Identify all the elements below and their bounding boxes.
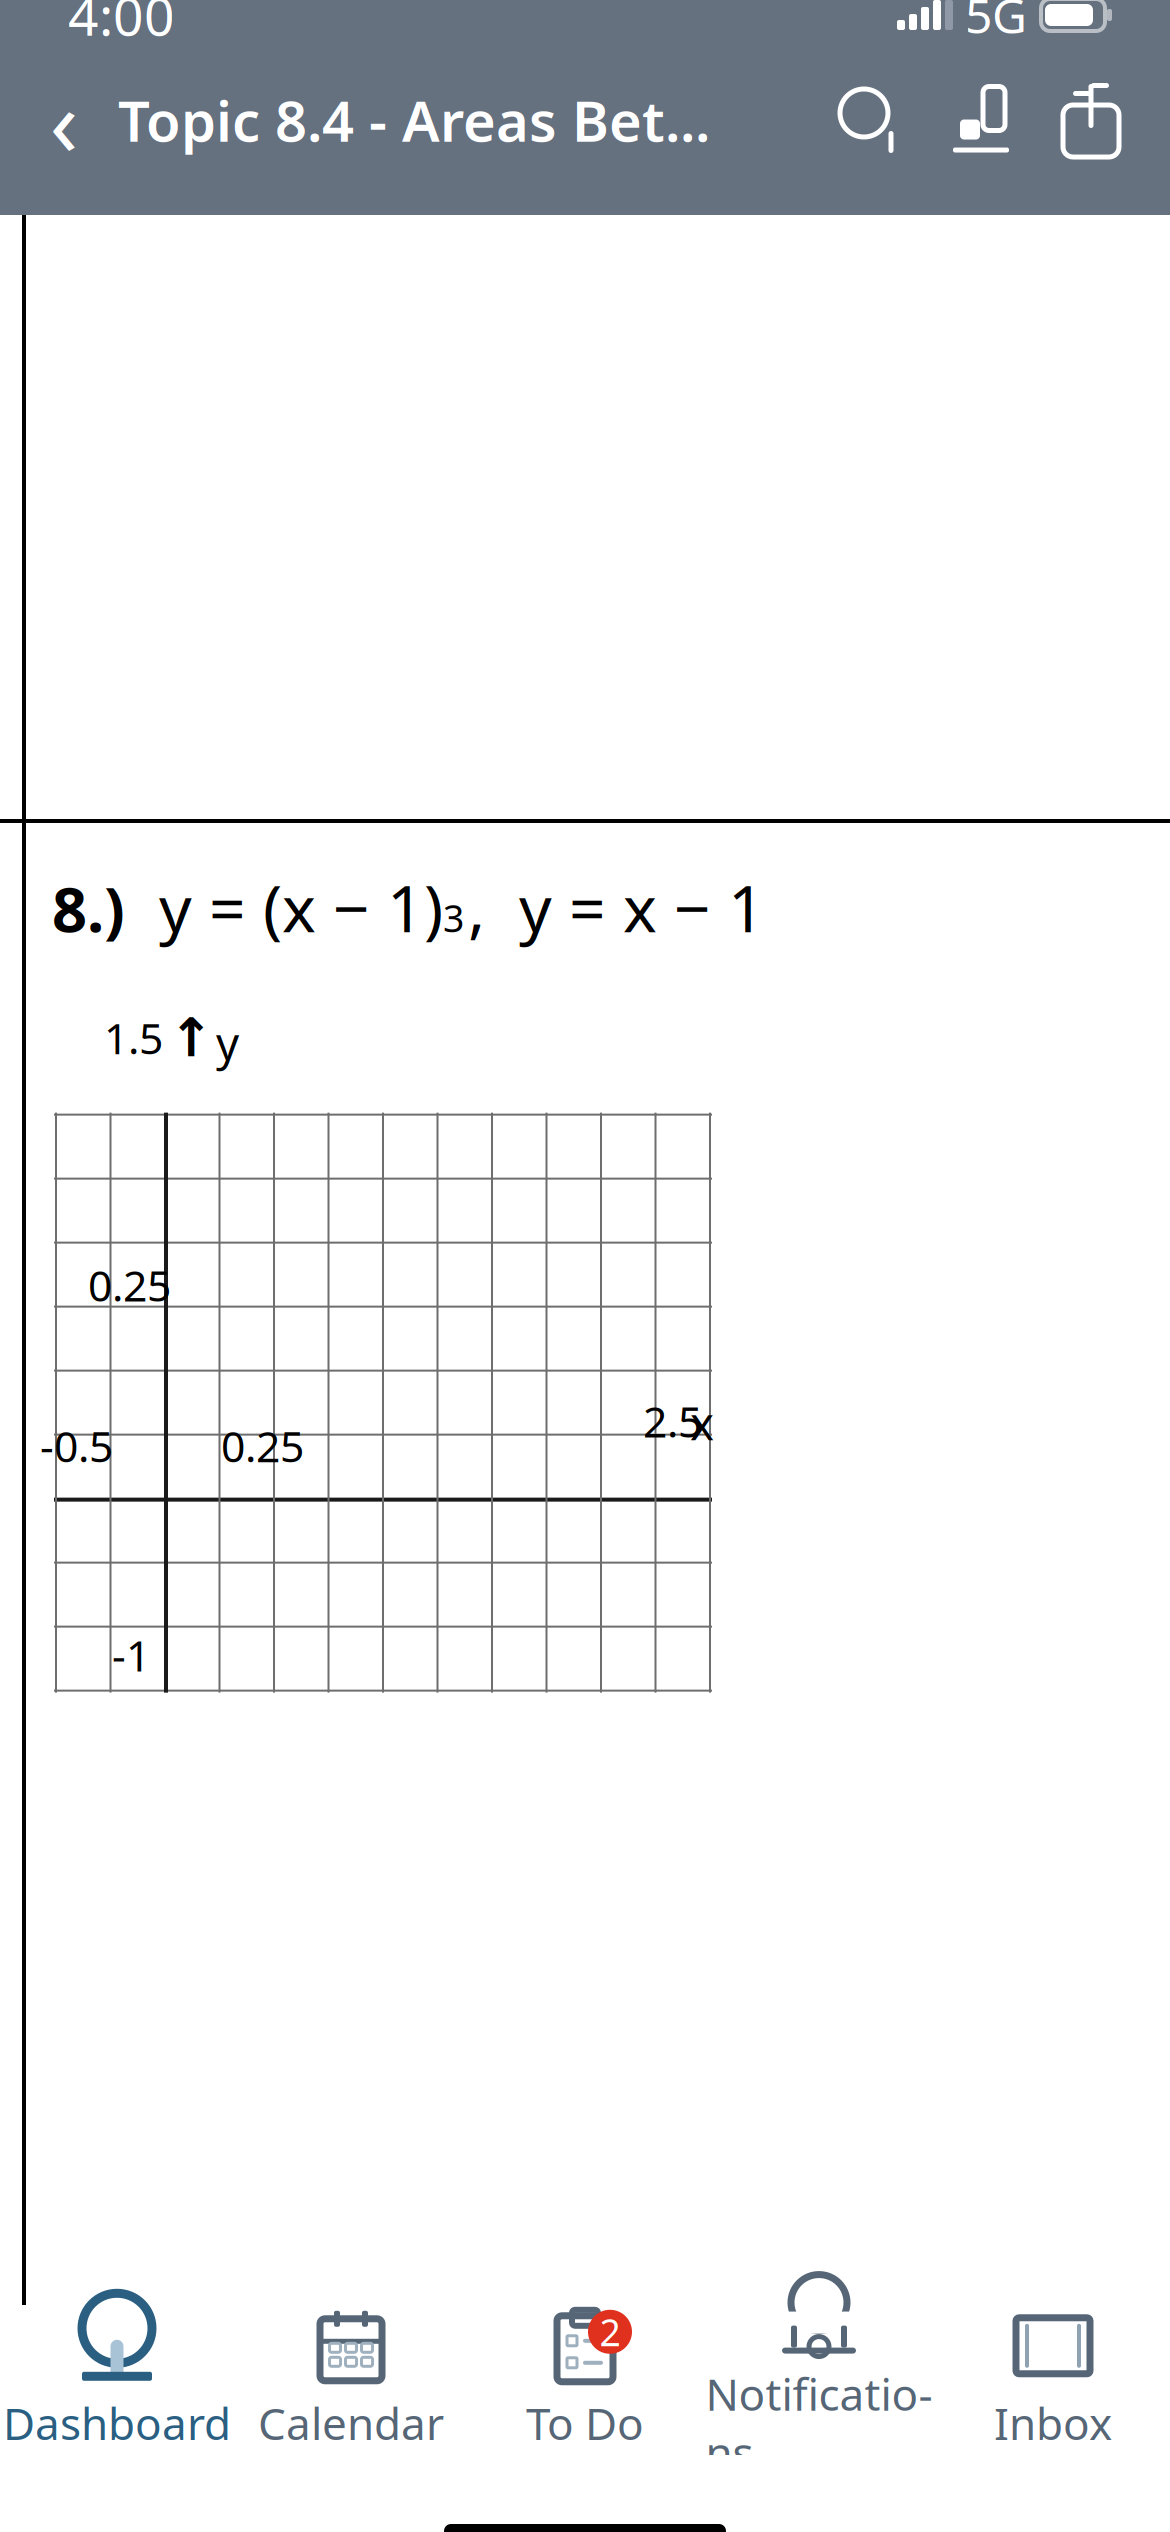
staticText: 3 xyxy=(443,893,464,943)
staticText: 2.5 xyxy=(643,1393,702,1449)
button[interactable]: Search xyxy=(836,85,906,155)
staticText: -0.5 xyxy=(40,1417,113,1474)
button[interactable]: Back xyxy=(18,72,110,168)
staticText: 2 xyxy=(599,2307,620,2357)
staticText: 1.5 xyxy=(104,1009,163,1066)
staticText: Notifications xyxy=(705,2365,932,2481)
button[interactable]: Notifications xyxy=(702,2305,936,2455)
staticText: y = (x − 1) xyxy=(159,865,443,950)
staticText: Calendar xyxy=(258,2394,444,2452)
staticText: To Do xyxy=(526,2394,644,2452)
staticText: x xyxy=(690,1393,714,1453)
staticText: 0.25 xyxy=(221,1417,304,1474)
staticText: Topic 8.4 - Areas Bet... xyxy=(118,83,710,157)
staticText: ↑ xyxy=(169,1007,214,1068)
staticText: 8.) xyxy=(52,868,125,949)
button[interactable]: Dashboard xyxy=(0,2305,234,2455)
button[interactable]: Calendar xyxy=(234,2305,468,2455)
button[interactable]: 2 xyxy=(468,2305,702,2455)
button[interactable]: Inbox xyxy=(936,2305,1170,2455)
staticText: 0.25 xyxy=(88,1257,171,1313)
staticText: 4:00 xyxy=(68,0,175,50)
staticText: Dashboard xyxy=(3,2394,231,2452)
staticText: -1 xyxy=(112,1627,150,1683)
staticText: , y = x − 1 xyxy=(468,865,765,950)
staticText: 5G xyxy=(965,0,1027,47)
staticText: y xyxy=(216,1013,239,1073)
staticText: Inbox xyxy=(994,2394,1112,2452)
staticText: ‹ xyxy=(49,58,78,182)
button[interactable]: Share xyxy=(1056,82,1126,158)
button[interactable]: Annotate xyxy=(946,85,1016,155)
